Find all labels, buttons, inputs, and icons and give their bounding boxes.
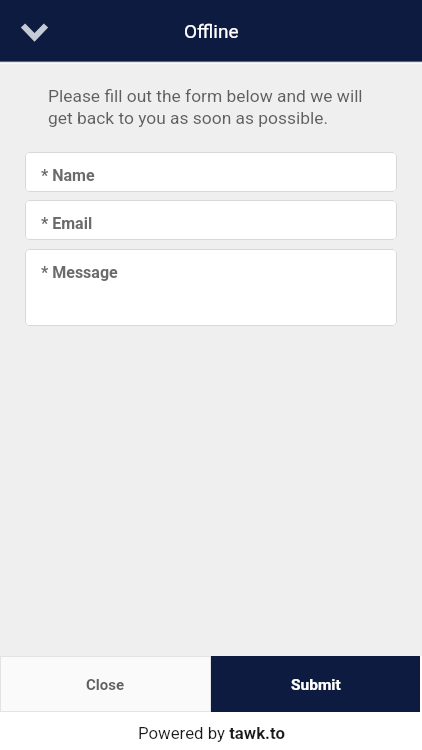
staticText: Submit bbox=[291, 676, 341, 694]
button[interactable]: * Email bbox=[25, 200, 397, 240]
button[interactable]: Submit bbox=[211, 656, 420, 712]
staticText: * Name bbox=[41, 166, 95, 185]
button[interactable]: Close bbox=[0, 656, 211, 712]
button[interactable]: Powered by tawk.to bbox=[138, 720, 285, 743]
staticText: * Email bbox=[41, 214, 93, 233]
button[interactable]: * Message bbox=[25, 249, 397, 326]
staticText: Please fill out the form below and we wi… bbox=[48, 85, 363, 129]
button[interactable]: Minimize chat bbox=[13, 9, 55, 51]
staticText: Offline bbox=[184, 20, 239, 42]
button[interactable]: * Name bbox=[25, 152, 397, 192]
staticText: * Message bbox=[41, 263, 118, 282]
staticText: Close bbox=[86, 676, 125, 694]
